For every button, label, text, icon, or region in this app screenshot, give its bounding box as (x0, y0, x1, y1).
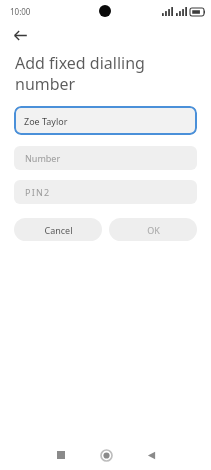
button[interactable]: OK (109, 218, 197, 241)
staticText: PIN2 (25, 186, 51, 198)
staticText: Number (25, 152, 61, 164)
staticText: Cancel (44, 224, 73, 236)
staticText: Zoe Taylor (24, 115, 68, 127)
button[interactable]: Back (134, 440, 168, 470)
staticText: Add fixed dialling number (15, 52, 199, 95)
button[interactable]: Cancel (14, 218, 102, 241)
button[interactable]: Zoe Taylor (14, 106, 197, 135)
button[interactable]: Home (89, 440, 123, 470)
button[interactable]: Back (7, 22, 33, 48)
staticText: 10:00 (10, 6, 31, 17)
staticText: OK (147, 224, 160, 236)
button[interactable]: Number (14, 146, 197, 170)
button[interactable]: Recent apps (44, 440, 78, 470)
button[interactable]: PIN2 (14, 180, 197, 204)
